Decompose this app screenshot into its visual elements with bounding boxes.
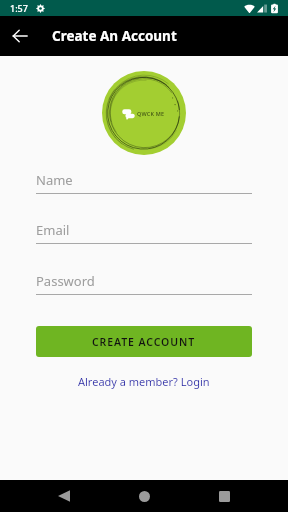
staticText: Create An Account: [52, 27, 177, 45]
button[interactable]: Back: [24, 480, 104, 512]
button[interactable]: CREATE ACCOUNT: [36, 326, 252, 357]
button[interactable]: Back: [0, 16, 40, 56]
button[interactable]: Recent apps: [184, 480, 264, 512]
staticText: Name: [36, 171, 73, 189]
button[interactable]: Already a member? Login: [74, 370, 214, 393]
button[interactable]: Home: [104, 480, 184, 512]
staticText: Already a member? Login: [78, 374, 210, 389]
staticText: CREATE ACCOUNT: [92, 335, 196, 349]
staticText: QWCK ME: [137, 110, 165, 117]
button[interactable]: Name: [36, 171, 252, 194]
button[interactable]: Password: [36, 272, 252, 295]
button[interactable]: Email: [36, 221, 252, 244]
staticText: 1:57: [10, 2, 28, 14]
staticText: Email: [36, 221, 70, 239]
staticText: Password: [36, 272, 95, 290]
